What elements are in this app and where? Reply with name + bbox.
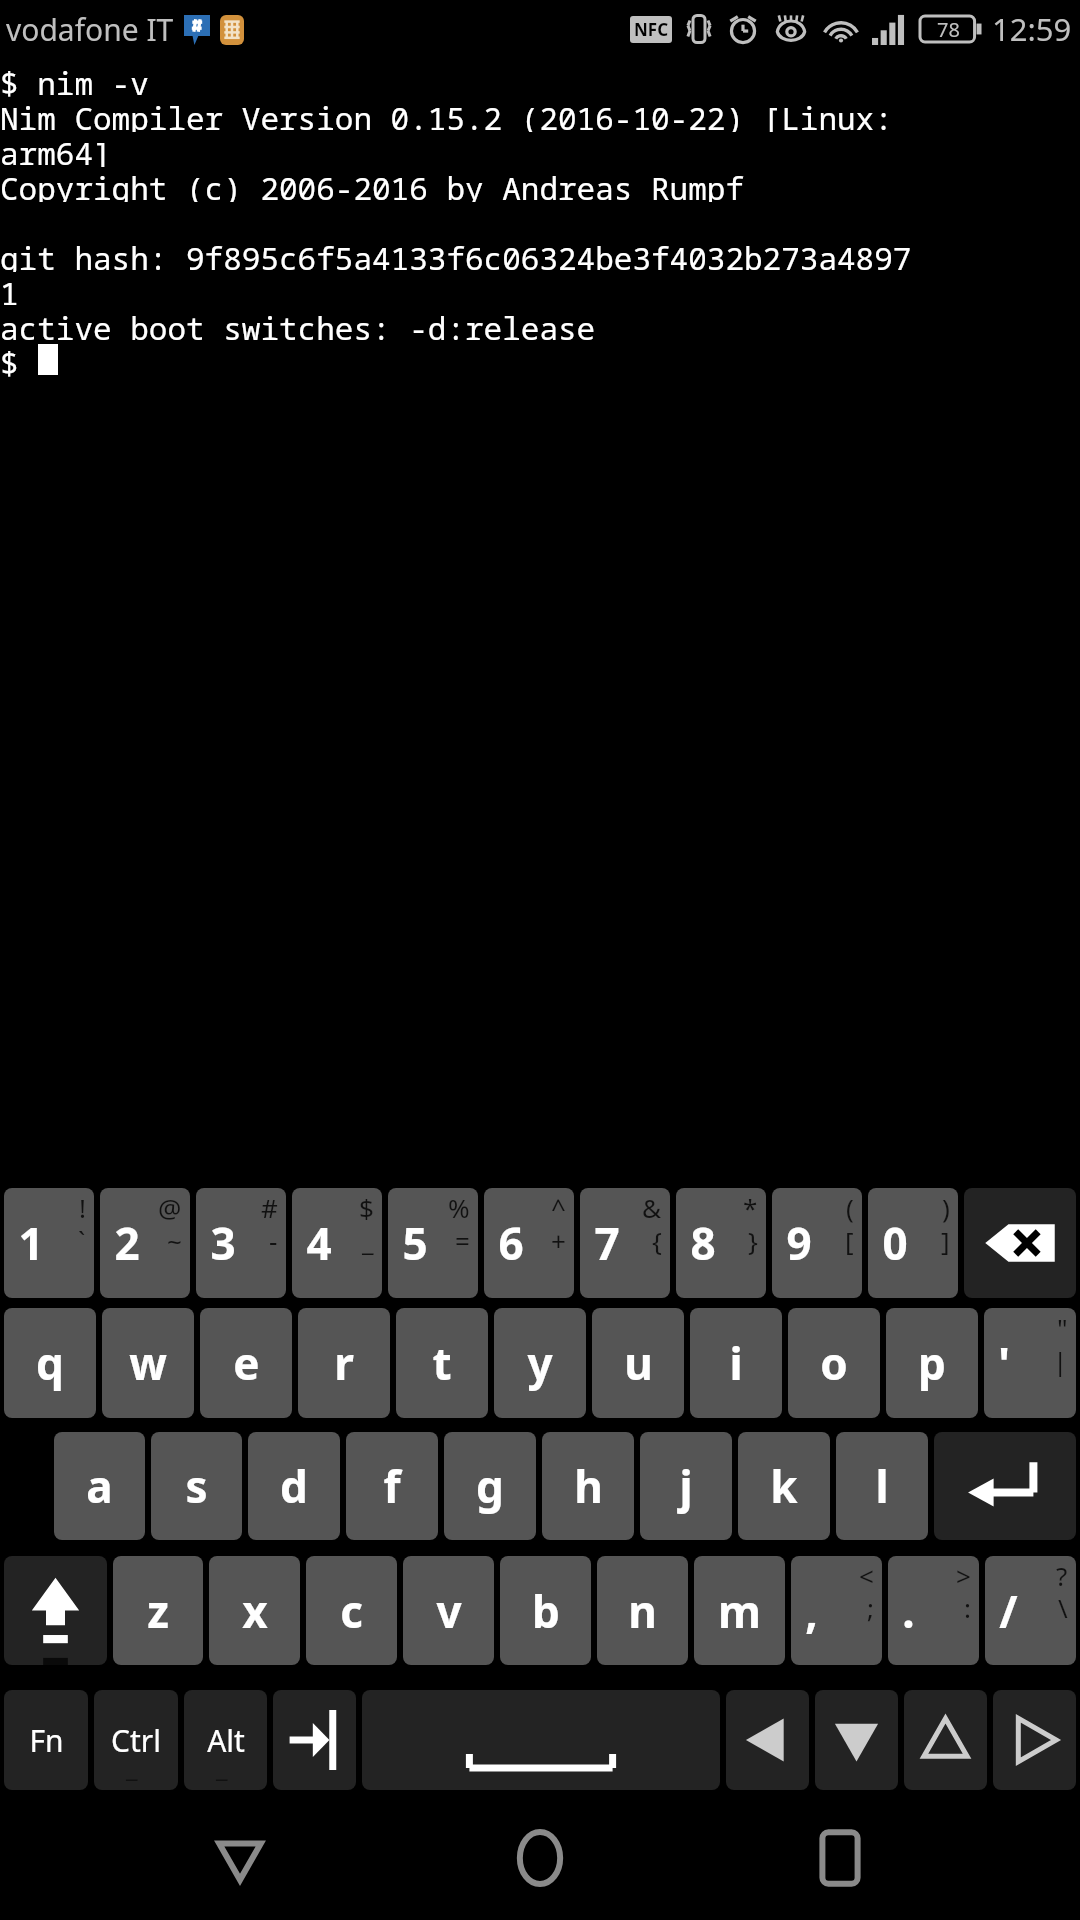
staticText: arm64] <box>0 132 1080 167</box>
staticText: _ <box>126 1749 138 1784</box>
button[interactable]: Fn <box>4 1690 88 1790</box>
button[interactable]: Home <box>480 1803 600 1913</box>
button[interactable]: h <box>542 1432 634 1540</box>
staticText: < <box>859 1558 874 1593</box>
button[interactable]: Down <box>815 1690 898 1790</box>
staticText: c <box>340 1581 363 1641</box>
staticText: 0 <box>882 1213 908 1273</box>
staticText: ` <box>78 1223 86 1258</box>
button[interactable]: x <box>209 1556 300 1665</box>
staticText: 2 <box>114 1213 140 1273</box>
button[interactable]: f <box>346 1432 438 1540</box>
button[interactable]: , <box>791 1556 882 1665</box>
button[interactable]: 3 <box>196 1188 286 1298</box>
staticText: # <box>261 1190 278 1225</box>
button[interactable]: c <box>306 1556 397 1665</box>
staticText: vodafone IT <box>6 9 174 50</box>
staticText: m <box>718 1581 761 1641</box>
staticText: _ <box>362 1223 374 1258</box>
button[interactable]: s <box>151 1432 242 1540</box>
button[interactable]: 1 <box>4 1188 94 1298</box>
button[interactable]: Ctrl <box>94 1690 178 1790</box>
button[interactable]: . <box>888 1556 979 1665</box>
button[interactable]: t <box>396 1308 488 1418</box>
staticText: j <box>679 1456 693 1516</box>
button[interactable]: b <box>500 1556 591 1665</box>
button[interactable]: j <box>640 1432 732 1540</box>
button[interactable]: 7 <box>580 1188 670 1298</box>
button[interactable]: Enter <box>934 1432 1076 1540</box>
staticText: h <box>574 1456 603 1516</box>
button[interactable]: Right <box>993 1690 1076 1790</box>
staticText: w <box>129 1333 167 1393</box>
staticText: , <box>805 1581 818 1641</box>
button[interactable]: g <box>444 1432 536 1540</box>
button[interactable]: o <box>788 1308 880 1418</box>
staticText: \ <box>1058 1590 1068 1625</box>
button[interactable]: Backspace <box>964 1188 1076 1298</box>
staticText: 9 <box>786 1213 812 1273</box>
button[interactable]: ' <box>984 1308 1076 1418</box>
button[interactable]: w <box>102 1308 194 1418</box>
button[interactable]: i <box>690 1308 782 1418</box>
button[interactable]: 4 <box>292 1188 382 1298</box>
button[interactable]: Recents <box>780 1803 900 1913</box>
button[interactable]: 9 <box>772 1188 862 1298</box>
staticText: x <box>242 1581 268 1641</box>
staticText: 5 <box>402 1213 428 1273</box>
button[interactable]: p <box>886 1308 978 1418</box>
button[interactable]: Shift <box>4 1556 107 1665</box>
staticText: & <box>642 1190 662 1225</box>
staticText: b <box>532 1581 560 1641</box>
staticText: k <box>770 1456 798 1516</box>
staticText: 7 <box>594 1213 620 1273</box>
staticText: $ <box>0 342 38 377</box>
staticText: o <box>820 1333 848 1393</box>
staticText: q <box>36 1333 64 1393</box>
staticText: - <box>269 1223 278 1258</box>
button[interactable]: l <box>836 1432 928 1540</box>
button[interactable]: 2 <box>100 1188 190 1298</box>
button[interactable]: k <box>738 1432 830 1540</box>
staticText: { <box>652 1223 662 1258</box>
button[interactable]: v <box>403 1556 494 1665</box>
button[interactable]: 6 <box>484 1188 574 1298</box>
staticText: 1 <box>0 272 1080 307</box>
staticText: * <box>743 1190 758 1225</box>
button[interactable]: Back <box>180 1803 300 1913</box>
staticText: % <box>448 1190 470 1225</box>
staticText: ) <box>942 1190 950 1225</box>
button[interactable]: Alt <box>184 1690 267 1790</box>
staticText: } <box>748 1223 758 1258</box>
button[interactable]: u <box>592 1308 684 1418</box>
staticText: u <box>624 1333 653 1393</box>
button[interactable]: a <box>54 1432 145 1540</box>
staticText: ( <box>846 1190 854 1225</box>
button[interactable]: 0 <box>868 1188 958 1298</box>
staticText: _ <box>216 1749 228 1784</box>
button[interactable]: q <box>4 1308 96 1418</box>
button[interactable]: Up <box>904 1690 987 1790</box>
staticText: [ <box>845 1223 854 1258</box>
button[interactable]: Space <box>362 1690 720 1790</box>
staticText: = <box>455 1223 470 1258</box>
staticText: Fn <box>29 1720 64 1761</box>
button[interactable]: y <box>494 1308 586 1418</box>
staticText: ~ <box>167 1223 182 1258</box>
staticText: active boot switches: -d:release <box>0 307 1080 342</box>
button[interactable]: 8 <box>676 1188 766 1298</box>
button[interactable]: z <box>113 1556 203 1665</box>
staticText: $ <box>359 1190 374 1225</box>
button[interactable]: m <box>694 1556 785 1665</box>
staticText: git hash: 9f895c6f5a4133f6c06324be3f4032… <box>0 237 1080 272</box>
button[interactable]: 5 <box>388 1188 478 1298</box>
button[interactable]: / <box>985 1556 1076 1665</box>
button[interactable]: n <box>597 1556 688 1665</box>
staticText: g <box>476 1456 504 1516</box>
button[interactable]: r <box>298 1308 390 1418</box>
button[interactable]: Left <box>726 1690 809 1790</box>
staticText: ^ <box>551 1190 566 1225</box>
button[interactable]: Tab <box>273 1690 356 1790</box>
button[interactable]: e <box>200 1308 292 1418</box>
button[interactable]: d <box>248 1432 340 1540</box>
